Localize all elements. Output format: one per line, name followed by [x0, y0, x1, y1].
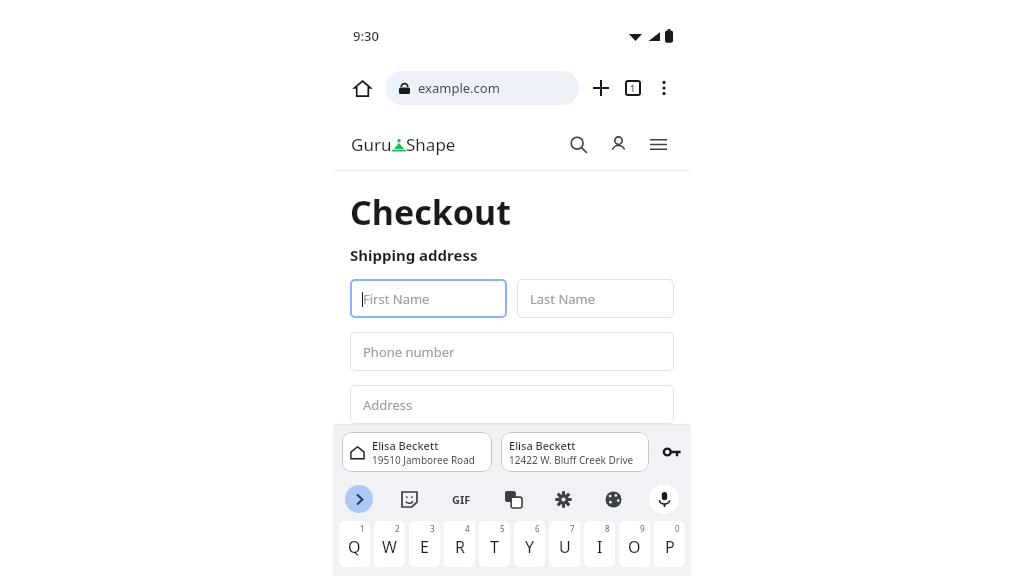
button[interactable]: New tab: [585, 72, 617, 104]
staticText: 6: [535, 523, 540, 534]
staticText: 8: [605, 523, 610, 534]
button[interactable]: example.com: [385, 71, 579, 105]
staticText: 1: [360, 523, 365, 534]
button[interactable]: Last Name: [517, 279, 674, 318]
staticText: 19510 Jamboree Road: [372, 453, 475, 467]
button[interactable]: Address: [350, 385, 674, 424]
button[interactable]: Theme: [599, 485, 627, 513]
staticText: R: [455, 536, 465, 558]
button[interactable]: 6: [514, 521, 545, 567]
staticText: Phone number: [363, 343, 455, 361]
button[interactable]: 7: [549, 521, 580, 567]
staticText: Checkout: [350, 189, 511, 235]
staticText: O: [628, 536, 641, 558]
button[interactable]: 5: [479, 521, 510, 567]
staticText: 1: [630, 82, 636, 94]
staticText: Guru: [351, 133, 392, 156]
staticText: Address: [363, 396, 413, 414]
button[interactable]: 9: [619, 521, 650, 567]
staticText: W: [382, 536, 397, 558]
button[interactable]: 1: [339, 521, 370, 567]
staticText: Shape: [406, 133, 456, 156]
button[interactable]: Search: [563, 129, 593, 159]
staticText: 3: [430, 523, 435, 534]
staticText: First Name: [363, 290, 430, 308]
staticText: Shipping address: [350, 245, 478, 265]
button[interactable]: First Name: [350, 279, 507, 318]
button[interactable]: Elisa Beckett: [501, 432, 649, 472]
button[interactable]: Passwords: [659, 439, 685, 465]
staticText: 9:30: [353, 27, 379, 45]
staticText: 0: [675, 523, 680, 534]
button[interactable]: Voice input: [649, 484, 679, 514]
staticText: 9: [640, 523, 645, 534]
staticText: E: [420, 536, 429, 558]
staticText: example.com: [418, 79, 500, 97]
staticText: P: [665, 536, 675, 558]
button[interactable]: Menu: [643, 129, 673, 159]
button[interactable]: Phone number: [350, 332, 674, 371]
staticText: Q: [348, 536, 361, 558]
staticText: I: [597, 536, 603, 558]
staticText: Elisa Beckett: [509, 438, 576, 453]
button[interactable]: Account: [603, 129, 633, 159]
button[interactable]: Expand toolbar: [345, 485, 373, 513]
staticText: Last Name: [530, 290, 596, 308]
staticText: 7: [570, 523, 575, 534]
button[interactable]: 2: [374, 521, 405, 567]
staticText: 4: [465, 523, 470, 534]
staticText: U: [559, 536, 571, 558]
button[interactable]: More options: [649, 73, 679, 103]
button[interactable]: 3: [409, 521, 440, 567]
staticText: GIF: [452, 492, 471, 507]
button[interactable]: Home: [345, 71, 379, 105]
staticText: Y: [525, 536, 535, 558]
staticText: 12422 W. Bluff Creek Drive: [509, 453, 634, 467]
button[interactable]: Settings: [549, 485, 577, 513]
button[interactable]: Guru: [351, 133, 456, 156]
button[interactable]: Tabs: [617, 72, 649, 104]
staticText: 2: [395, 523, 400, 534]
button[interactable]: GIF: [445, 483, 477, 515]
button[interactable]: Translate: [499, 485, 527, 513]
button[interactable]: 4: [444, 521, 475, 567]
staticText: Elisa Beckett: [372, 438, 439, 453]
staticText: 5: [500, 523, 505, 534]
button[interactable]: 0: [654, 521, 685, 567]
button[interactable]: Elisa Beckett: [342, 432, 492, 472]
staticText: T: [490, 536, 499, 558]
button[interactable]: Stickers: [395, 485, 423, 513]
button[interactable]: 8: [584, 521, 615, 567]
